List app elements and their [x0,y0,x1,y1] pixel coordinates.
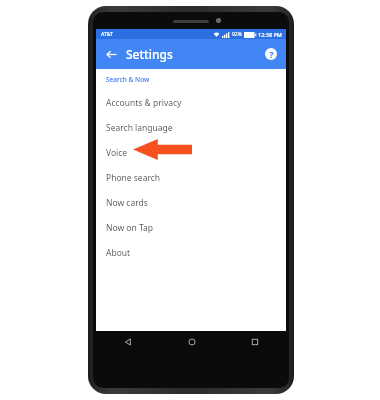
staticText: About [106,247,131,259]
button[interactable]: Now cards [96,190,286,215]
staticText: ? [269,48,274,60]
staticText: AT&T [101,31,113,38]
staticText: Phone search [106,172,161,184]
staticText: Voice [106,147,128,159]
staticText: Now on Tap [106,222,153,234]
staticText: Settings [126,46,173,62]
button[interactable]: About [96,240,286,265]
staticText: Search & Now [106,75,150,84]
button[interactable]: Phone search [96,165,286,190]
button[interactable]: Voice [96,140,286,165]
button[interactable]: Recents [223,331,286,353]
button[interactable]: Now on Tap [96,215,286,240]
button[interactable]: Back [96,331,160,353]
staticText: Accounts & privacy [106,97,182,109]
button[interactable]: Home [160,331,223,353]
button[interactable]: Back [101,44,121,64]
button[interactable]: Search language [96,115,286,140]
staticText: 12:38 PM [258,31,282,38]
staticText: 92% [232,31,242,38]
button[interactable]: Accounts & privacy [96,90,286,115]
button[interactable]: Help [262,45,280,63]
staticText: Search language [106,122,173,134]
staticText: Now cards [106,197,148,209]
